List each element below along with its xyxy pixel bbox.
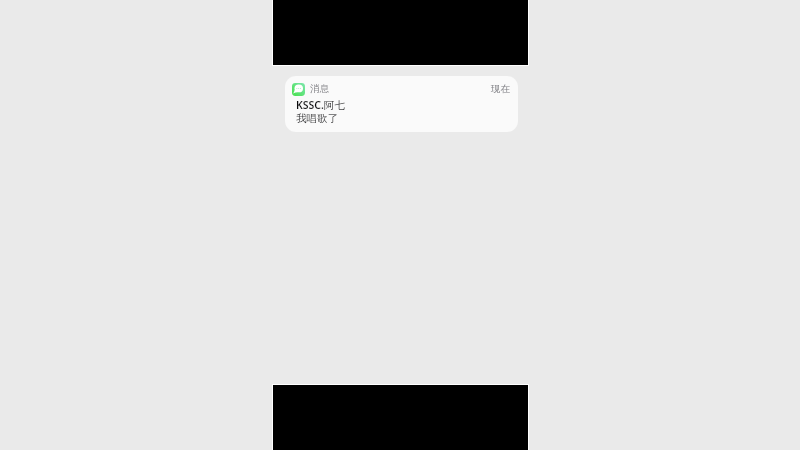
staticText: 我唱歌了: [296, 112, 338, 125]
staticText: 现在: [491, 83, 510, 95]
staticText: 消息: [310, 83, 329, 95]
other: Messages app icon: [292, 83, 305, 96]
staticText: KSSC.阿七: [296, 98, 345, 112]
button[interactable]: Messages app icon: [285, 76, 518, 132]
